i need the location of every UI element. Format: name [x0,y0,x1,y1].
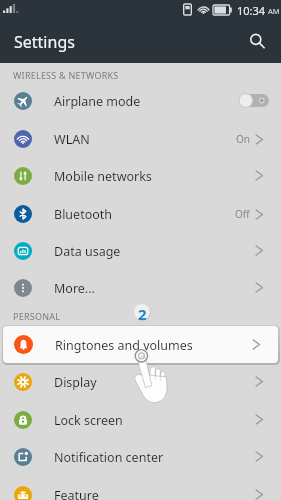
staticText: Notification center [54,449,164,466]
button[interactable]: Airplane mode [0,82,281,119]
staticText: Feature [54,487,99,500]
staticText: Display [54,374,97,391]
button[interactable]: Lock screen [0,401,281,438]
button[interactable]: Data usage [0,232,281,269]
button[interactable]: Bluetooth [0,195,281,232]
staticText: 10:34 [237,3,266,18]
staticText: AM [268,6,280,16]
button[interactable]: Ringtones and volumes [3,326,278,363]
staticText: PERSONAL [13,310,61,322]
staticText: Settings [14,31,75,53]
staticText: Mobile networks [54,168,152,185]
button[interactable]: Display [0,363,281,400]
staticText: More... [54,280,95,297]
staticText: Off [235,207,250,221]
staticText: WLAN [54,131,90,148]
staticText: Bluetooth [54,206,113,223]
button[interactable]: More... [0,269,281,306]
staticText: Lock screen [54,412,123,429]
button[interactable]: WLAN [0,120,281,157]
staticText: Airplane mode [54,93,141,110]
button[interactable]: Search [236,20,277,61]
button[interactable]: Notification center [0,438,281,475]
staticText: 2 [138,304,147,320]
staticText: On [236,132,250,146]
staticText: WIRELESS & NETWORKS [13,69,119,81]
button[interactable]: Mobile networks [0,157,281,194]
staticText: Data usage [54,243,121,260]
button[interactable]: Feature [0,476,281,500]
staticText: Ringtones and volumes [55,337,193,354]
